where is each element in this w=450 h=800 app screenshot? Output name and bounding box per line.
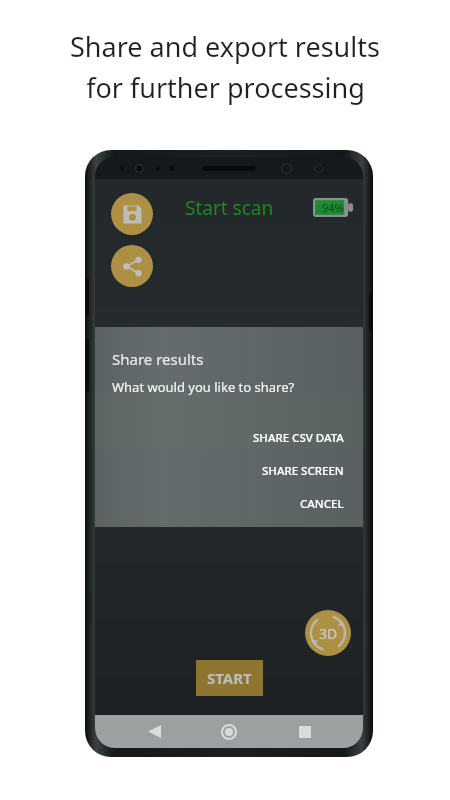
button[interactable]: SHARE CSV DATA [112,430,344,446]
staticText: What would you like to share? [112,378,295,396]
staticText: CANCEL [300,496,344,512]
staticText: Share results [112,349,204,369]
staticText: for further processing [86,69,365,106]
button[interactable]: CANCEL [112,496,344,512]
staticText: Start scan [185,195,274,221]
staticText: START [207,668,252,688]
button[interactable]: Save results [111,193,153,235]
staticText: 3D [319,624,338,643]
staticText: SHARE CSV DATA [253,430,344,446]
staticText: 94% [322,200,344,215]
button[interactable]: Share [111,245,153,287]
button[interactable]: SHARE SCREEN [112,463,344,479]
button[interactable]: Toggle 3D view [305,610,351,656]
button[interactable]: Home [212,715,246,748]
button[interactable]: Back [137,715,171,748]
staticText: SHARE SCREEN [262,463,344,479]
staticText: Share and export results [70,28,380,65]
button[interactable]: Recent apps [288,715,322,748]
button[interactable]: START [196,660,263,696]
